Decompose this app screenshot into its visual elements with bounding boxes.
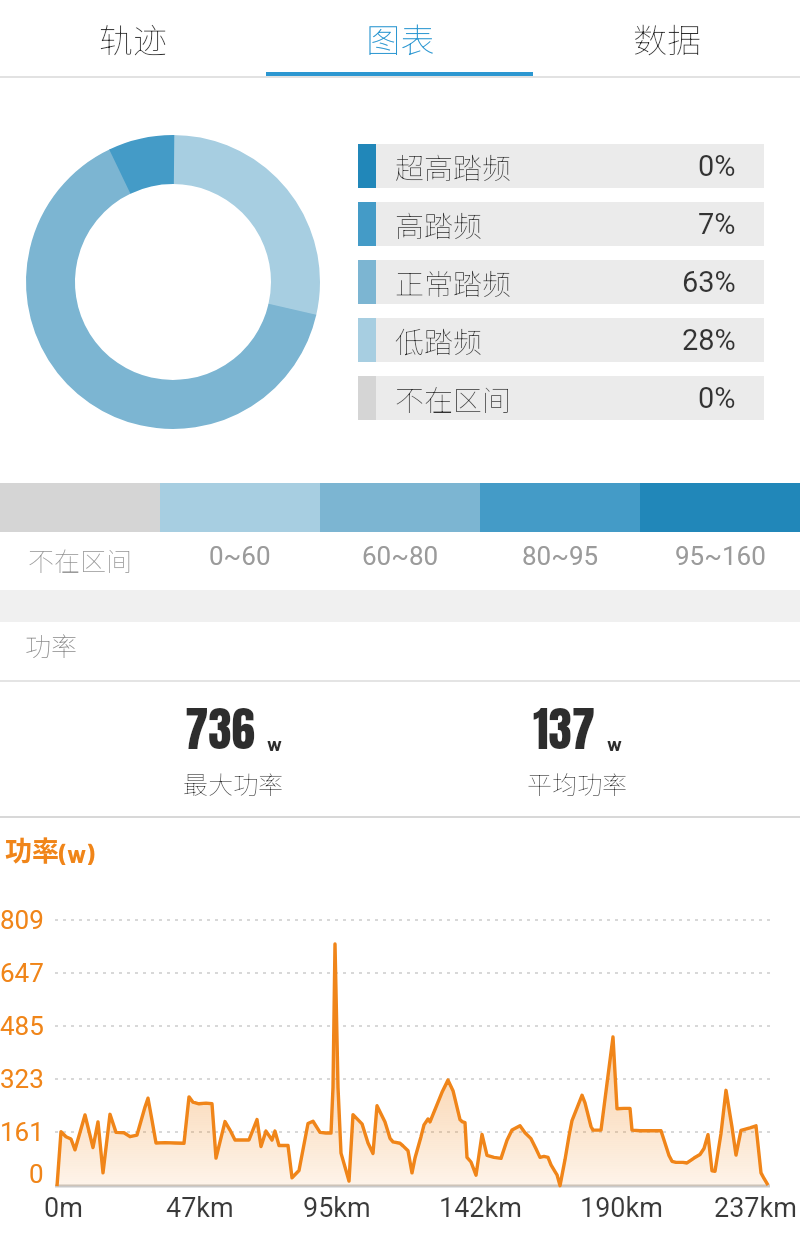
- staticText: 轨迹: [99, 14, 167, 63]
- staticText: 平均功率: [527, 765, 628, 801]
- staticText: 60~80: [362, 541, 439, 571]
- staticText: 237km: [714, 1192, 797, 1224]
- staticText: 0: [29, 1159, 44, 1189]
- staticText: 161: [0, 1117, 44, 1147]
- staticText: 不在区间: [28, 541, 133, 579]
- staticText: 736: [185, 694, 255, 765]
- staticText: 图表: [366, 14, 434, 63]
- staticText: 647: [0, 958, 44, 988]
- staticText: 0~60: [209, 541, 271, 571]
- button[interactable]: 轨迹: [0, 0, 266, 76]
- staticText: 功率: [25, 626, 78, 664]
- staticText: 超高踏频: [395, 145, 512, 187]
- staticText: 数据: [633, 14, 701, 63]
- staticText: 低踏频: [395, 319, 483, 361]
- staticText: 0%: [698, 149, 736, 183]
- staticText: 最大功率: [183, 765, 284, 801]
- staticText: 28%: [682, 323, 736, 357]
- staticText: 0%: [698, 381, 736, 415]
- staticText: 137: [533, 694, 595, 765]
- staticText: 95~160: [675, 541, 766, 571]
- staticText: 809: [0, 905, 44, 935]
- staticText: 323: [0, 1064, 44, 1094]
- staticText: 功率: [5, 830, 59, 869]
- staticText: w: [267, 732, 282, 755]
- staticText: 95km: [303, 1192, 371, 1224]
- staticText: (w): [59, 839, 95, 868]
- staticText: 正常踏频: [395, 261, 512, 303]
- button[interactable]: 图表: [266, 0, 533, 76]
- staticText: 47km: [166, 1192, 234, 1224]
- staticText: 不在区间: [395, 377, 512, 419]
- staticText: 80~95: [522, 541, 599, 571]
- button[interactable]: 数据: [533, 0, 800, 76]
- staticText: 63%: [682, 265, 736, 299]
- staticText: 高踏频: [395, 203, 483, 245]
- staticText: 0m: [44, 1192, 83, 1224]
- staticText: 142km: [439, 1192, 522, 1224]
- staticText: 190km: [580, 1192, 663, 1224]
- staticText: 7%: [698, 207, 736, 241]
- staticText: w: [607, 732, 622, 755]
- staticText: 485: [0, 1011, 44, 1041]
